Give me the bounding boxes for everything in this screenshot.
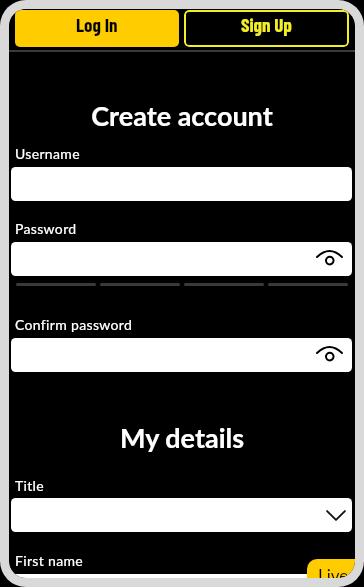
button[interactable] [11, 167, 352, 201]
button[interactable]: Log In [15, 10, 179, 47]
button[interactable]: Show password [11, 338, 352, 372]
staticText: Password [15, 220, 77, 237]
button[interactable]: Open dropdown [11, 498, 352, 532]
staticText: Title [15, 477, 44, 494]
button[interactable]: Show password [11, 242, 352, 276]
other: Show password [316, 246, 343, 266]
staticText: Create account [9, 99, 355, 131]
staticText: Live chat [318, 565, 355, 578]
staticText: First name [15, 552, 84, 569]
staticText: My details [9, 421, 355, 453]
staticText: Confirm password [15, 316, 133, 333]
button[interactable] [11, 574, 352, 578]
button[interactable]: Sign Up [184, 10, 349, 47]
staticText: Username [15, 145, 80, 162]
button[interactable]: Live chat [307, 559, 355, 578]
staticText: Log In [76, 13, 118, 36]
other: Show password [316, 342, 343, 362]
staticText: Sign Up [241, 13, 292, 36]
other: Open dropdown [326, 510, 346, 521]
